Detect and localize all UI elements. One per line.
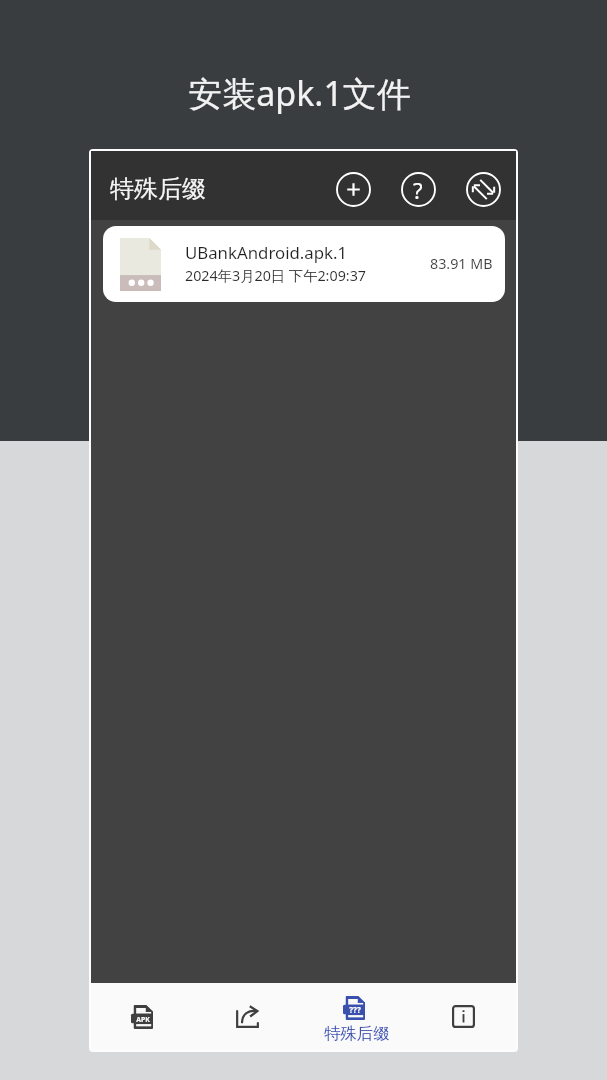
button[interactable]: UBankAndroid.apk.1 [103, 226, 505, 302]
staticText: APK [136, 1015, 150, 1024]
staticText: 特殊后缀 [324, 1023, 390, 1044]
staticText: 2024年3月20日 下午2:09:37 [185, 266, 366, 286]
staticText: ??? [349, 1004, 361, 1015]
button[interactable]: Add [331, 167, 375, 211]
staticText: 特殊后缀 [110, 174, 206, 204]
button[interactable]: Sort [461, 167, 505, 211]
staticText: 安装apk.1文件 [0, 70, 603, 116]
button[interactable]: Info [410, 983, 516, 1050]
staticText: ? [413, 175, 423, 205]
button[interactable]: ??? [304, 983, 410, 1050]
button[interactable]: Help [396, 167, 440, 211]
button[interactable]: APK files [91, 983, 198, 1050]
staticText: UBankAndroid.apk.1 [185, 241, 348, 264]
staticText: 83.91 MB [430, 254, 493, 273]
button[interactable]: Share [198, 983, 304, 1050]
